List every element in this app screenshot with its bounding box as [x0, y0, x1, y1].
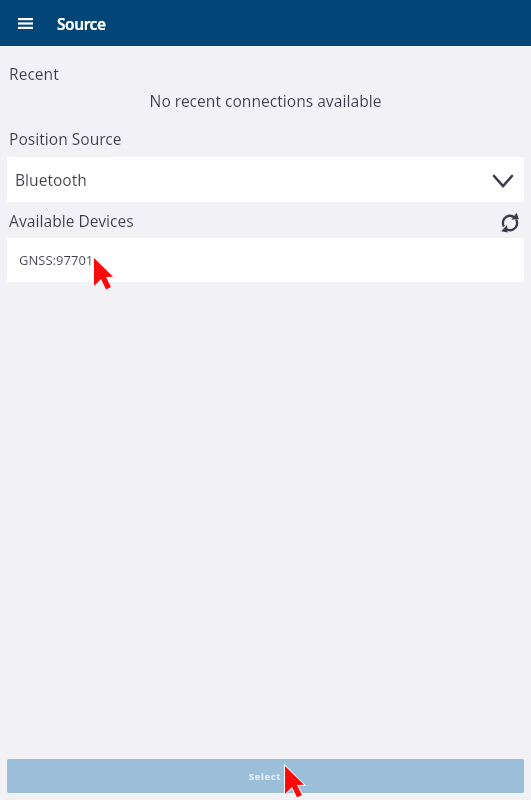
button[interactable]: GNSS:97701: [7, 238, 524, 282]
staticText: Source: [57, 13, 106, 34]
button[interactable]: Refresh device list: [497, 210, 523, 236]
staticText: Position Source: [9, 128, 122, 149]
staticText: Available Devices: [9, 210, 134, 231]
staticText: No recent connections available: [0, 90, 531, 111]
staticText: GNSS:97701: [19, 251, 94, 269]
staticText: Bluetooth: [15, 169, 87, 190]
button[interactable]: Select: [7, 759, 524, 793]
staticText: Select: [249, 770, 282, 783]
button[interactable]: Bluetooth: [7, 157, 524, 202]
button[interactable]: Open navigation menu: [7, 5, 43, 41]
staticText: Recent: [9, 63, 59, 84]
